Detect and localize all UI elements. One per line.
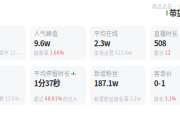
staticText: 转粉率 xyxy=(34,49,50,56)
staticText: 622.4w xyxy=(115,49,132,56)
button[interactable]: 观看人次 xyxy=(0,26,26,60)
staticText: 0-1 xyxy=(154,78,165,88)
staticText: 9.6w xyxy=(34,38,50,48)
staticText: 的达人 xyxy=(62,95,78,102)
staticText: 508 xyxy=(154,38,166,48)
staticText: 本场点赞 xyxy=(94,49,115,56)
staticText: 2.3w xyxy=(94,38,110,48)
staticText: 转化 xyxy=(154,95,165,102)
staticText: 超过 xyxy=(34,95,45,102)
staticText: 68.81% xyxy=(45,95,62,102)
staticText: 12 xyxy=(165,49,171,56)
button[interactable]: 平均在线 xyxy=(90,26,146,60)
staticText: 较上场直播提升 12.4% 全站达人 xyxy=(0,49,24,56)
button[interactable]: 客单价 xyxy=(150,66,180,105)
staticText: 直播时长 xyxy=(154,29,178,37)
staticText: 187.1w xyxy=(94,78,118,88)
staticText: 累计 xyxy=(154,49,165,56)
button[interactable]: 平均停留时长 xyxy=(30,66,86,105)
button[interactable]: 商品曝光 xyxy=(0,66,26,105)
staticText: 1分37秒 xyxy=(34,78,60,88)
staticText: 人气峰值 xyxy=(34,29,58,37)
button[interactable]: 人气峰值 xyxy=(30,26,86,60)
staticText: 商品点击 · 成交金额 · 成交人数 · 转化率 · 客单价 xyxy=(152,2,180,9)
staticText: 新增粉丝转化率 xyxy=(94,95,130,102)
staticText: 带货 xyxy=(169,8,180,18)
staticText: 2.2w xyxy=(130,95,141,102)
staticText: 1.66% xyxy=(50,49,64,56)
staticText: 平均停留时长 xyxy=(34,69,70,77)
staticText: 商品曝光人数 13.5% 超过 xyxy=(0,95,24,102)
button[interactable]: 直播时长 xyxy=(150,26,180,60)
staticText: 新增粉丝 xyxy=(94,69,118,77)
staticText: 客单价 xyxy=(154,69,172,77)
staticText: 平均在线 xyxy=(94,29,118,37)
button[interactable]: 新增粉丝 xyxy=(90,66,146,105)
staticText: 3.1% xyxy=(165,95,176,102)
